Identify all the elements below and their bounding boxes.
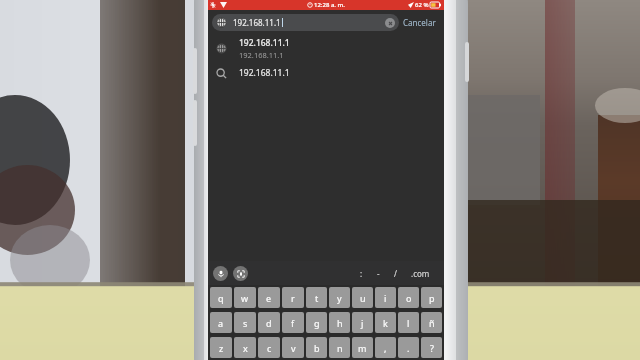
staticText: y	[337, 292, 342, 304]
other: Website	[216, 43, 227, 54]
staticText: a	[218, 317, 224, 329]
button[interactable]: ,	[375, 337, 396, 358]
button[interactable]: p	[421, 287, 442, 308]
staticText: 12:28 a. m.	[314, 1, 345, 9]
button[interactable]: h	[329, 312, 350, 333]
button[interactable]: -	[370, 264, 387, 283]
button[interactable]: g	[306, 312, 327, 333]
staticText: z	[219, 342, 224, 354]
staticText: 62 %	[415, 1, 429, 9]
staticText: u	[360, 292, 366, 304]
staticText: 192.168.11.1	[233, 17, 281, 28]
staticText: e	[266, 292, 272, 304]
staticText: 192.168.11.1	[239, 67, 290, 79]
button[interactable]: :	[353, 264, 370, 283]
button[interactable]: l	[398, 312, 419, 333]
other: Search	[216, 68, 227, 79]
button[interactable]: i	[375, 287, 396, 308]
button[interactable]: r	[282, 287, 304, 308]
button[interactable]: /	[387, 264, 404, 283]
button[interactable]: .	[398, 337, 419, 358]
button[interactable]: a	[210, 312, 232, 333]
button[interactable]: j	[352, 312, 373, 333]
button[interactable]: Website	[208, 34, 444, 62]
staticText: f	[291, 317, 295, 329]
staticText: p	[429, 292, 435, 304]
staticText: x	[243, 342, 248, 354]
button[interactable]: o	[398, 287, 419, 308]
staticText: w	[241, 292, 249, 304]
staticText: /	[394, 268, 397, 279]
staticText: ,	[384, 342, 387, 354]
staticText: v	[291, 342, 296, 354]
button[interactable]: z	[210, 337, 232, 358]
staticText: o	[406, 292, 412, 304]
button[interactable]: Cancelar	[399, 14, 440, 31]
button[interactable]: ?	[421, 337, 442, 358]
button[interactable]: k	[375, 312, 396, 333]
staticText: i	[384, 292, 387, 304]
button[interactable]: u	[352, 287, 373, 308]
button[interactable]: b	[306, 337, 327, 358]
staticText: -	[377, 268, 380, 279]
button[interactable]: q	[210, 287, 232, 308]
staticText: r	[291, 292, 295, 304]
button[interactable]: Voice input	[213, 266, 228, 281]
staticText: c	[267, 342, 272, 354]
button[interactable]: Clear text	[385, 18, 395, 28]
other: Website	[216, 17, 227, 28]
staticText: k	[383, 317, 388, 329]
button[interactable]: Search	[208, 62, 444, 84]
button[interactable]: Scan QR code	[233, 266, 248, 281]
staticText: h	[337, 317, 343, 329]
staticText: j	[361, 317, 364, 329]
staticText: q	[218, 292, 224, 304]
staticText: 192.168.11.1	[239, 37, 290, 49]
button[interactable]: f	[282, 312, 304, 333]
button[interactable]: c	[258, 337, 280, 358]
staticText: .	[407, 342, 410, 354]
staticText: :	[360, 268, 363, 279]
staticText: b	[314, 342, 320, 354]
button[interactable]: v	[282, 337, 304, 358]
staticText: ñ	[429, 317, 435, 329]
button[interactable]: d	[258, 312, 280, 333]
staticText: 192.168.11.1	[239, 50, 284, 60]
button[interactable]: ñ	[421, 312, 442, 333]
button[interactable]: s	[234, 312, 256, 333]
staticText: ?	[430, 342, 434, 354]
button[interactable]: x	[234, 337, 256, 358]
button[interactable]: m	[352, 337, 373, 358]
button[interactable]: n	[329, 337, 350, 358]
staticText: s	[243, 317, 248, 329]
staticText: t	[315, 292, 319, 304]
button[interactable]: t	[306, 287, 327, 308]
staticText: m	[358, 342, 367, 354]
staticText: .com	[411, 268, 430, 279]
button[interactable]: w	[234, 287, 256, 308]
staticText: l	[407, 317, 410, 329]
button[interactable]: .com	[404, 264, 437, 283]
staticText: g	[314, 317, 320, 329]
staticText: n	[337, 342, 343, 354]
staticText: d	[266, 317, 272, 329]
button[interactable]: Website	[212, 14, 399, 31]
button[interactable]: y	[329, 287, 350, 308]
button[interactable]: e	[258, 287, 280, 308]
staticText: Cancelar	[403, 17, 436, 28]
